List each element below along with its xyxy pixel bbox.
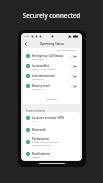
staticText: Operating Status bbox=[40, 42, 64, 46]
button[interactable]: Toggle bbox=[71, 55, 77, 58]
button[interactable]: Low lab monitor bbox=[23, 71, 80, 81]
staticText: Low lab monitor bbox=[32, 74, 55, 78]
button[interactable]: Refresh all bbox=[46, 98, 57, 101]
button[interactable]: Toggle bbox=[71, 85, 77, 88]
staticText: Securely connected bbox=[0, 11, 103, 19]
staticText: Location services (GPS) bbox=[32, 116, 65, 120]
button[interactable]: Bluetooth bbox=[23, 124, 80, 136]
button[interactable]: Toggle bbox=[71, 65, 77, 68]
button[interactable]: Toggle bbox=[71, 75, 77, 78]
staticText: Phone, Location, Bluetooth, bbox=[32, 141, 60, 144]
staticText: Last checked 10:24 bbox=[57, 49, 77, 52]
button[interactable]: LocationBot bbox=[23, 61, 80, 71]
staticText: Allowed bbox=[32, 156, 41, 159]
button[interactable]: Notifications bbox=[23, 148, 80, 160]
staticText: 10:24 bbox=[24, 35, 30, 38]
button[interactable]: Emergency Call Status bbox=[23, 51, 80, 61]
staticText: 85% Good bbox=[32, 88, 43, 91]
staticText: Emergency Call Status bbox=[32, 54, 64, 58]
staticText: On bbox=[32, 120, 36, 123]
button[interactable]: Location services (GPS) bbox=[23, 112, 80, 124]
button[interactable]: Permissions bbox=[23, 136, 80, 148]
staticText: Bluetooth bbox=[32, 128, 47, 132]
staticText: Storage and others bbox=[32, 144, 51, 147]
button[interactable]: Back bbox=[22, 40, 29, 47]
staticText: LocationBot bbox=[32, 64, 49, 68]
staticText: Permissions bbox=[32, 137, 50, 141]
staticText: On bbox=[32, 132, 36, 135]
staticText: Notifications bbox=[32, 152, 51, 156]
staticText: Connected bbox=[32, 58, 44, 61]
staticText: Intercepts bbox=[32, 78, 43, 81]
staticText: Status of VoIP Process bbox=[32, 68, 56, 71]
staticText: System settings bbox=[26, 109, 45, 112]
staticText: Battery level bbox=[32, 84, 50, 88]
button[interactable]: Battery level bbox=[23, 81, 80, 91]
